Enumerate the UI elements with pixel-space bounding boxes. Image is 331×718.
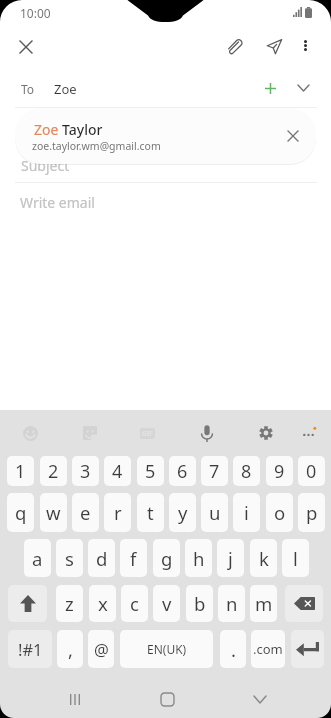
button[interactable]: Send bbox=[256, 28, 293, 65]
button[interactable]: 5 bbox=[137, 456, 164, 486]
staticText: r bbox=[114, 500, 122, 525]
button[interactable]: a bbox=[24, 539, 51, 577]
staticText: Write email bbox=[20, 193, 95, 212]
staticText: l bbox=[293, 546, 298, 571]
button[interactable]: Backspace bbox=[285, 585, 323, 622]
button[interactable]: z bbox=[56, 585, 83, 622]
button[interactable]: @ bbox=[88, 630, 114, 668]
button[interactable]: Emoji bbox=[16, 419, 44, 447]
staticText: p bbox=[306, 500, 318, 525]
button[interactable]: . bbox=[220, 630, 246, 668]
button[interactable]: s bbox=[56, 539, 83, 577]
button[interactable]: 1 bbox=[7, 456, 34, 486]
button[interactable]: Remove recipient bbox=[277, 120, 309, 152]
button[interactable]: n bbox=[218, 585, 245, 622]
button[interactable]: 2 bbox=[40, 456, 67, 486]
staticText: , bbox=[68, 637, 73, 662]
button[interactable]: More options bbox=[288, 28, 323, 63]
staticText: j bbox=[228, 546, 233, 571]
button[interactable]: Attach file bbox=[217, 28, 254, 65]
staticText: GIF bbox=[142, 429, 153, 438]
button[interactable]: h bbox=[185, 539, 212, 577]
staticText: a bbox=[32, 546, 43, 571]
button[interactable]: , bbox=[57, 630, 83, 668]
staticText: s bbox=[65, 546, 74, 571]
button[interactable]: b bbox=[186, 585, 213, 622]
button[interactable]: e bbox=[72, 493, 99, 532]
staticText: 6 bbox=[177, 459, 188, 484]
staticText: To bbox=[21, 81, 35, 97]
staticText: 5 bbox=[145, 459, 156, 484]
button[interactable]: v bbox=[153, 585, 180, 622]
button[interactable]: Shift bbox=[8, 585, 47, 622]
button[interactable]: k bbox=[250, 539, 277, 577]
button[interactable]: 9 bbox=[266, 456, 293, 486]
button[interactable]: i bbox=[233, 493, 260, 532]
staticText: x bbox=[98, 591, 108, 616]
button[interactable]: w bbox=[40, 493, 67, 532]
button[interactable]: j bbox=[217, 539, 244, 577]
button[interactable]: r bbox=[104, 493, 131, 532]
button[interactable]: EN(UK) bbox=[120, 630, 213, 668]
staticText: n bbox=[226, 591, 238, 616]
staticText: i bbox=[244, 500, 249, 525]
button[interactable]: Show more fields bbox=[287, 72, 319, 104]
button[interactable]: More keyboard options bbox=[294, 419, 322, 447]
button[interactable]: Back bbox=[243, 683, 276, 716]
staticText: q bbox=[15, 500, 27, 525]
staticText: zoe.taylor.wm@gmail.com bbox=[32, 139, 161, 153]
staticText: g bbox=[161, 546, 173, 571]
button[interactable]: !#1 bbox=[8, 630, 52, 668]
button[interactable]: GIF bbox=[133, 419, 161, 447]
staticText: 4 bbox=[112, 459, 123, 484]
staticText: 3 bbox=[80, 459, 91, 484]
button[interactable]: x bbox=[89, 585, 116, 622]
staticText: h bbox=[193, 546, 205, 571]
button[interactable]: 3 bbox=[72, 456, 99, 486]
button[interactable]: 8 bbox=[233, 456, 260, 486]
button[interactable]: p bbox=[298, 493, 325, 532]
staticText: c bbox=[130, 591, 139, 616]
staticText: 7 bbox=[209, 459, 220, 484]
staticText: o bbox=[274, 500, 286, 525]
staticText: e bbox=[80, 500, 91, 525]
button[interactable]: Enter bbox=[291, 630, 324, 668]
button[interactable]: l bbox=[282, 539, 309, 577]
button[interactable]: Zoe Taylor bbox=[15, 108, 316, 164]
staticText: u bbox=[209, 500, 221, 525]
button[interactable]: t bbox=[137, 493, 164, 532]
button[interactable]: Close bbox=[7, 28, 45, 66]
button[interactable]: .com bbox=[251, 630, 285, 668]
button[interactable]: Stickers bbox=[76, 419, 104, 447]
button[interactable]: Voice input bbox=[193, 419, 221, 447]
button[interactable]: Keyboard settings bbox=[252, 419, 280, 447]
button[interactable]: d bbox=[88, 539, 115, 577]
button[interactable]: Recent apps bbox=[58, 683, 91, 716]
staticText: EN(UK) bbox=[147, 641, 187, 657]
staticText: . bbox=[231, 637, 236, 662]
staticText: t bbox=[147, 500, 154, 525]
staticText: 8 bbox=[241, 459, 252, 484]
staticText: !#1 bbox=[18, 638, 43, 660]
button[interactable]: y bbox=[169, 493, 196, 532]
staticText: y bbox=[178, 500, 188, 525]
button[interactable]: f bbox=[120, 539, 147, 577]
button[interactable]: g bbox=[153, 539, 180, 577]
button[interactable]: 0 bbox=[298, 456, 325, 486]
button[interactable]: 7 bbox=[201, 456, 228, 486]
button[interactable]: u bbox=[201, 493, 228, 532]
staticText: Zoe Taylor bbox=[34, 120, 103, 139]
staticText: 10:00 bbox=[20, 5, 51, 21]
staticText: 0 bbox=[306, 459, 317, 484]
button[interactable]: c bbox=[121, 585, 148, 622]
staticText: m bbox=[255, 591, 273, 616]
staticText: k bbox=[259, 546, 269, 571]
button[interactable]: q bbox=[7, 493, 34, 532]
button[interactable]: Add recipient bbox=[254, 72, 286, 104]
button[interactable]: Home bbox=[151, 683, 184, 716]
button[interactable]: 4 bbox=[104, 456, 131, 486]
button[interactable]: 6 bbox=[169, 456, 196, 486]
button[interactable]: m bbox=[250, 585, 277, 622]
staticText: f bbox=[130, 546, 137, 571]
button[interactable]: o bbox=[266, 493, 293, 532]
